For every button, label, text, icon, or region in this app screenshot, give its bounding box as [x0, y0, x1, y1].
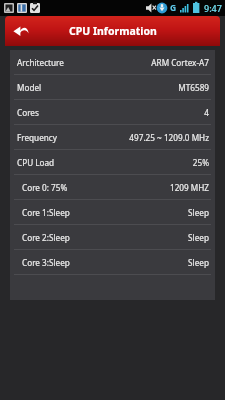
staticText: 497.25 ~ 1209.0 MHz [129, 132, 209, 143]
button[interactable]: Frequency [10, 125, 215, 150]
button[interactable]: Back [5, 16, 37, 46]
staticText: Model [17, 82, 42, 93]
staticText: Architecture [17, 57, 64, 68]
staticText: Sleep [188, 207, 209, 218]
button[interactable]: Core 2:Sleep [10, 225, 215, 250]
button[interactable]: Cores [10, 100, 215, 125]
staticText: 4 [204, 107, 209, 118]
staticText: CPU Information [69, 24, 157, 38]
staticText: CPU Load [17, 157, 55, 168]
button[interactable]: Architecture [10, 50, 215, 75]
button[interactable]: Core 0: 75% [10, 175, 215, 200]
staticText: 25% [192, 157, 209, 168]
staticText: Core 1:Sleep [22, 207, 70, 218]
button[interactable]: CPU Load [10, 150, 215, 175]
button[interactable]: Model [10, 75, 215, 100]
staticText: 1209 MHZ [169, 182, 209, 193]
staticText: Core 2:Sleep [22, 232, 70, 243]
staticText: MT6589 [178, 82, 209, 93]
staticText: G [170, 2, 177, 14]
staticText: Core 3:Sleep [22, 257, 70, 268]
button[interactable]: Core 3:Sleep [10, 250, 215, 275]
staticText: Frequency [17, 132, 57, 143]
staticText: ARM Cortex-A7 [151, 57, 209, 68]
staticText: Sleep [188, 232, 209, 243]
staticText: Cores [17, 107, 39, 118]
staticText: Core 0: 75% [22, 182, 68, 193]
staticText: 9:47 [204, 2, 222, 14]
staticText: Sleep [188, 257, 209, 268]
button[interactable]: Core 1:Sleep [10, 200, 215, 225]
